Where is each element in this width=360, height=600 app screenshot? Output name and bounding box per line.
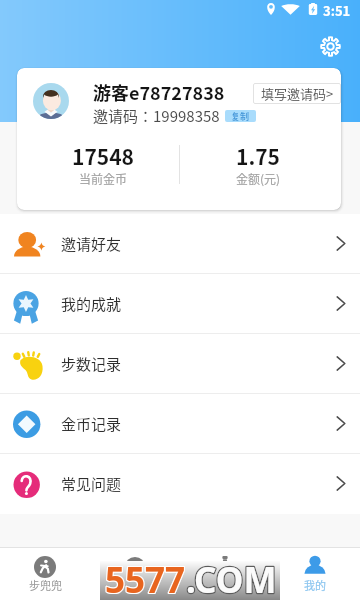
button[interactable]: 步兜兜: [0, 548, 90, 600]
staticText: .COM: [186, 556, 277, 600]
button[interactable]: 我的: [270, 548, 360, 600]
button[interactable]: 复制: [225, 110, 256, 122]
staticText: 邀请码：19998358: [93, 105, 220, 127]
staticText: 我的: [304, 577, 326, 593]
staticText: 游客e78727838: [93, 79, 225, 105]
staticText: 金币记录: [61, 413, 122, 435]
staticText: 步兜兜: [29, 577, 62, 593]
staticText: 当前金币: [79, 170, 128, 187]
staticText: 邀请好友: [61, 233, 122, 255]
staticText: 填写邀请码>: [261, 84, 334, 103]
button[interactable]: 步数记录: [0, 334, 360, 393]
button[interactable]: 金币记录: [0, 394, 360, 453]
staticText: 步数记录: [61, 353, 122, 375]
button[interactable]: 喝水: [180, 548, 270, 600]
staticText: 喝水: [214, 577, 236, 593]
staticText: 金额(元): [236, 170, 281, 187]
staticText: 17548: [72, 141, 134, 171]
button[interactable]: 邀请好友: [0, 214, 360, 273]
staticText: 5577: [105, 556, 186, 600]
staticText: 复制: [231, 110, 250, 122]
staticText: 我的成就: [61, 293, 122, 315]
staticText: .COM: [186, 556, 277, 600]
staticText: 1.75: [236, 141, 280, 171]
staticText: 排行榜: [119, 577, 152, 593]
staticText: 5577: [105, 556, 186, 600]
staticText: 3:51: [323, 1, 351, 20]
staticText: 常见问题: [61, 473, 122, 495]
button[interactable]: 我的成就: [0, 274, 360, 333]
button[interactable]: Settings: [315, 31, 345, 61]
button[interactable]: 常见问题: [0, 454, 360, 513]
button[interactable]: 填写邀请码>: [253, 83, 341, 104]
button[interactable]: 排行榜: [90, 548, 180, 600]
